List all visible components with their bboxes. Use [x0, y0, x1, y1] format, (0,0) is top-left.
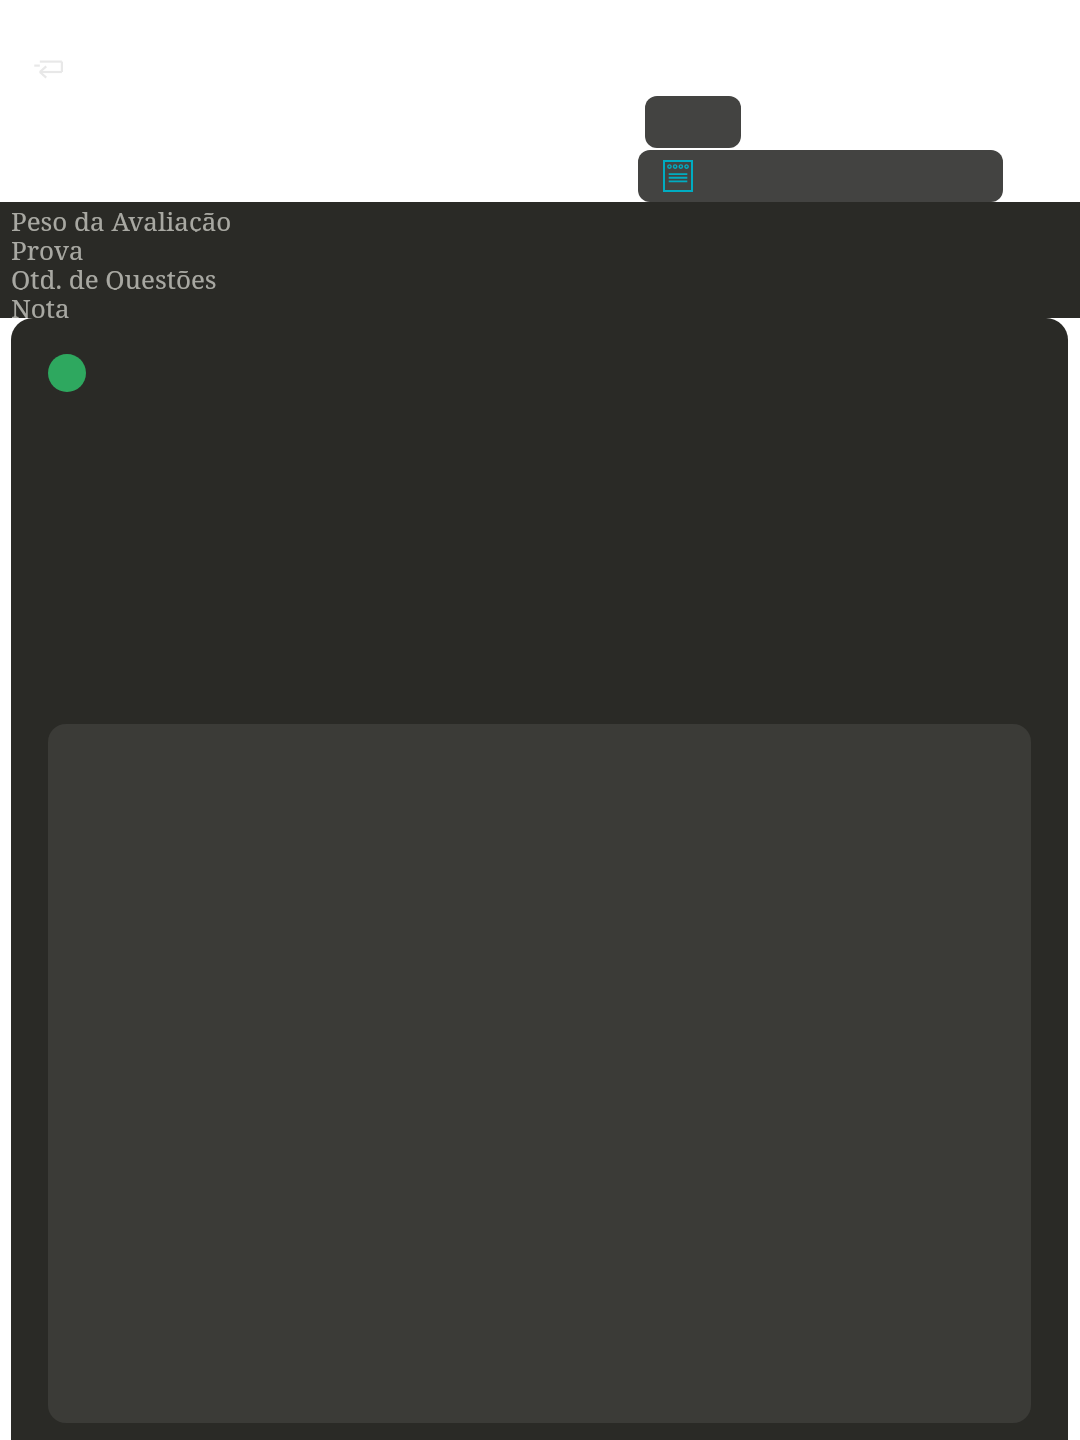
button[interactable]: Voltar [26, 48, 72, 88]
staticText: Qtd. de Questões [11, 261, 217, 290]
button[interactable]: Aba [645, 96, 741, 148]
button[interactable]: Avaliacao [638, 150, 1003, 202]
staticText: Peso da Avaliação [11, 203, 232, 232]
staticText: Nota [11, 290, 70, 319]
staticText: Prova [11, 232, 84, 261]
other: Avaliacao [663, 160, 693, 192]
